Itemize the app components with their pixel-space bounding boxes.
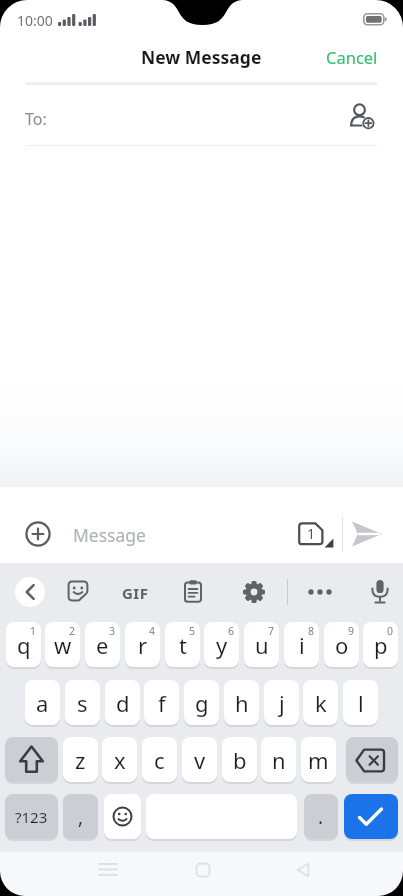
staticText: x [114, 745, 126, 775]
button[interactable]: y [204, 622, 239, 667]
button[interactable]: p [363, 622, 398, 667]
button[interactable] [5, 737, 58, 782]
button[interactable]: ?123 [5, 794, 58, 839]
staticText: Message [73, 523, 146, 547]
staticText: g [195, 688, 209, 718]
button[interactable]: Cancel [312, 44, 378, 70]
button[interactable]: b [222, 737, 257, 782]
staticText: 7 [268, 624, 275, 638]
staticText: w [54, 630, 72, 660]
staticText: q [17, 630, 31, 660]
button[interactable] [369, 578, 391, 606]
button[interactable] [350, 519, 384, 549]
button[interactable]: q [6, 622, 41, 667]
staticText: 6 [228, 624, 235, 638]
button[interactable]: s [65, 680, 100, 725]
button[interactable]: i [284, 622, 319, 667]
staticText: 10:00 [17, 11, 53, 30]
staticText: l [358, 688, 364, 718]
staticText: b [233, 745, 247, 775]
staticText: . [318, 804, 324, 830]
staticText: a [36, 688, 49, 718]
staticText: 2 [69, 624, 76, 638]
staticText: u [255, 630, 269, 660]
staticText: ?123 [15, 807, 48, 827]
button[interactable] [295, 862, 311, 878]
staticText: 1 [307, 524, 316, 543]
staticText: y [216, 630, 228, 660]
button[interactable] [242, 579, 266, 605]
staticText: p [374, 630, 388, 660]
staticText: d [116, 688, 130, 718]
staticText: 5 [189, 624, 196, 638]
button[interactable]: , [63, 794, 98, 839]
staticText: j [279, 688, 285, 718]
button[interactable] [297, 521, 337, 549]
staticText: c [154, 745, 165, 775]
button[interactable] [348, 103, 376, 131]
button[interactable]: h [224, 680, 259, 725]
staticText: New Message [141, 45, 262, 69]
button[interactable] [182, 579, 204, 605]
button[interactable]: j [264, 680, 299, 725]
staticText: Cancel [326, 46, 378, 68]
staticText: n [272, 745, 286, 775]
staticText: 8 [308, 624, 315, 638]
button[interactable]: v [182, 737, 217, 782]
button[interactable]: l [343, 680, 378, 725]
button[interactable] [344, 794, 398, 839]
staticText: z [75, 745, 86, 775]
button[interactable] [195, 862, 211, 878]
button[interactable]: f [144, 680, 179, 725]
staticText: 4 [149, 624, 156, 638]
staticText: t [179, 630, 187, 660]
button[interactable] [25, 521, 51, 547]
button[interactable]: c [142, 737, 177, 782]
staticText: f [158, 688, 166, 718]
button[interactable]: k [303, 680, 338, 725]
button[interactable]: t [165, 622, 200, 667]
staticText: i [299, 630, 305, 660]
button[interactable] [15, 577, 45, 607]
staticText: 0 [387, 624, 394, 638]
staticText: 3 [109, 624, 116, 638]
staticText: h [235, 688, 249, 718]
staticText: 9 [348, 624, 355, 638]
button[interactable]: r [125, 622, 160, 667]
staticText: v [194, 745, 206, 775]
staticText: 1 [30, 624, 37, 638]
button[interactable]: d [105, 680, 140, 725]
button[interactable]: g [184, 680, 219, 725]
button[interactable]: m [301, 737, 336, 782]
staticText: To: [25, 108, 47, 130]
button[interactable] [98, 862, 118, 878]
button[interactable]: e [85, 622, 120, 667]
button[interactable]: GIF [122, 583, 149, 603]
staticText: e [96, 630, 109, 660]
button[interactable]: n [261, 737, 296, 782]
staticText: s [77, 688, 88, 718]
staticText: r [138, 630, 148, 660]
button[interactable]: x [102, 737, 137, 782]
button[interactable] [66, 579, 90, 603]
button[interactable] [306, 585, 334, 599]
button[interactable]: u [244, 622, 279, 667]
staticText: m [308, 745, 329, 775]
staticText: o [335, 630, 349, 660]
button[interactable]: o [324, 622, 359, 667]
button[interactable]: z [63, 737, 98, 782]
button[interactable]: . [304, 794, 338, 839]
staticText: , [78, 804, 84, 830]
button[interactable]: a [25, 680, 60, 725]
button[interactable] [346, 737, 398, 782]
button[interactable] [104, 794, 141, 839]
staticText: k [315, 688, 327, 718]
button[interactable]: w [45, 622, 80, 667]
